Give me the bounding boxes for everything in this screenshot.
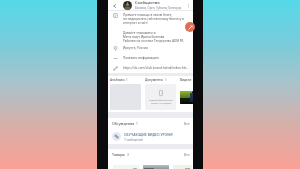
staticText: ОБУЧАЮЩИЕ ВИДЕО УРОКИ!	[124, 132, 173, 137]
button[interactable]: More options	[185, 2, 191, 8]
staticText: Примите помощь в своем блоге,	[123, 13, 173, 17]
button[interactable]: Все	[184, 121, 190, 126]
staticText: Давайте знакомиться	[123, 31, 156, 35]
staticText: Работаю на системе Тендерства ADM FR.	[123, 39, 185, 43]
button[interactable]: Видеозаписи	[180, 78, 193, 110]
staticText: 7 сообщений	[124, 138, 143, 142]
staticText: https://vk.com/club.brand.holodilnikov.h…	[123, 66, 190, 70]
staticText: 1	[165, 78, 167, 82]
button[interactable]: Иркутск, Россия	[113, 43, 190, 53]
staticText: Документы	[145, 78, 164, 82]
staticText: 1	[136, 122, 138, 126]
staticText: Иркутск, Россия	[123, 46, 148, 50]
button[interactable]	[142, 164, 170, 169]
staticText: экспедиционно-собственному бизнесу в	[123, 17, 184, 21]
staticText: Меня зовут Ирина Блинова	[123, 35, 165, 39]
button[interactable]: Документы	[145, 78, 176, 110]
staticText: 1	[126, 78, 128, 82]
staticText: схема 1.0 Модель	[151, 101, 172, 104]
button[interactable]: Все	[184, 152, 190, 157]
staticText: Базовая, Орел, Губкина, Белгород	[135, 6, 182, 10]
staticText: Все	[184, 121, 190, 126]
button[interactable]	[172, 164, 193, 169]
staticText: Видеозаписи	[180, 78, 193, 82]
button[interactable]	[112, 164, 140, 169]
button[interactable]: https://vk.com/club.brand.holodilnikov.h…	[113, 63, 190, 73]
staticText: Товары	[112, 152, 126, 157]
staticText: Радиолюбительская	[149, 98, 173, 101]
staticText: Показать информацию	[123, 56, 159, 60]
button[interactable]: Compose message	[185, 22, 195, 32]
staticText: Альбомы	[110, 78, 125, 82]
staticText: 3	[127, 153, 129, 157]
button[interactable]: Альбомы	[110, 78, 141, 110]
staticText: Обсуждения	[112, 121, 135, 126]
staticText: интернет и сайт!	[123, 21, 148, 25]
staticText: Все	[184, 152, 190, 157]
button[interactable]: Back	[111, 2, 118, 9]
staticText: Сообщество	[135, 0, 160, 5]
button[interactable]: ОБУЧАЮЩИЕ ВИДЕО УРОКИ!	[112, 129, 190, 144]
button[interactable]: Показать информацию	[113, 53, 190, 63]
